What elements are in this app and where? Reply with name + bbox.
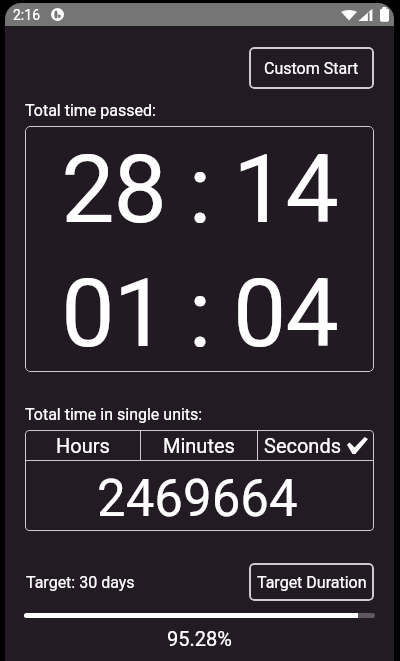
staticText: Hours — [56, 434, 110, 457]
button[interactable]: Minutes — [141, 430, 257, 460]
button[interactable]: 2469664 — [25, 461, 374, 531]
staticText: 95.28% — [5, 627, 394, 650]
staticText: 2469664 — [97, 469, 298, 529]
staticText: Target: 30 days — [26, 573, 135, 592]
button[interactable]: Custom Start — [249, 47, 374, 89]
other: Notification — [51, 8, 64, 21]
staticText: Minutes — [163, 434, 235, 457]
staticText: Total time passed: — [25, 101, 156, 120]
staticText: Total time in single units: — [25, 405, 203, 424]
staticText: Target Duration — [257, 573, 367, 592]
button[interactable]: Seconds — [258, 430, 374, 460]
button[interactable]: Hours — [25, 430, 140, 460]
button[interactable]: 28 : 14 — [25, 126, 374, 372]
staticText: Seconds — [264, 434, 342, 457]
staticText: 28 : 14 — [25, 134, 374, 245]
button[interactable]: Target Duration — [249, 563, 374, 601]
staticText: Custom Start — [264, 59, 359, 78]
staticText: 2:16 — [13, 7, 40, 23]
staticText: 01 : 04 — [25, 258, 374, 369]
